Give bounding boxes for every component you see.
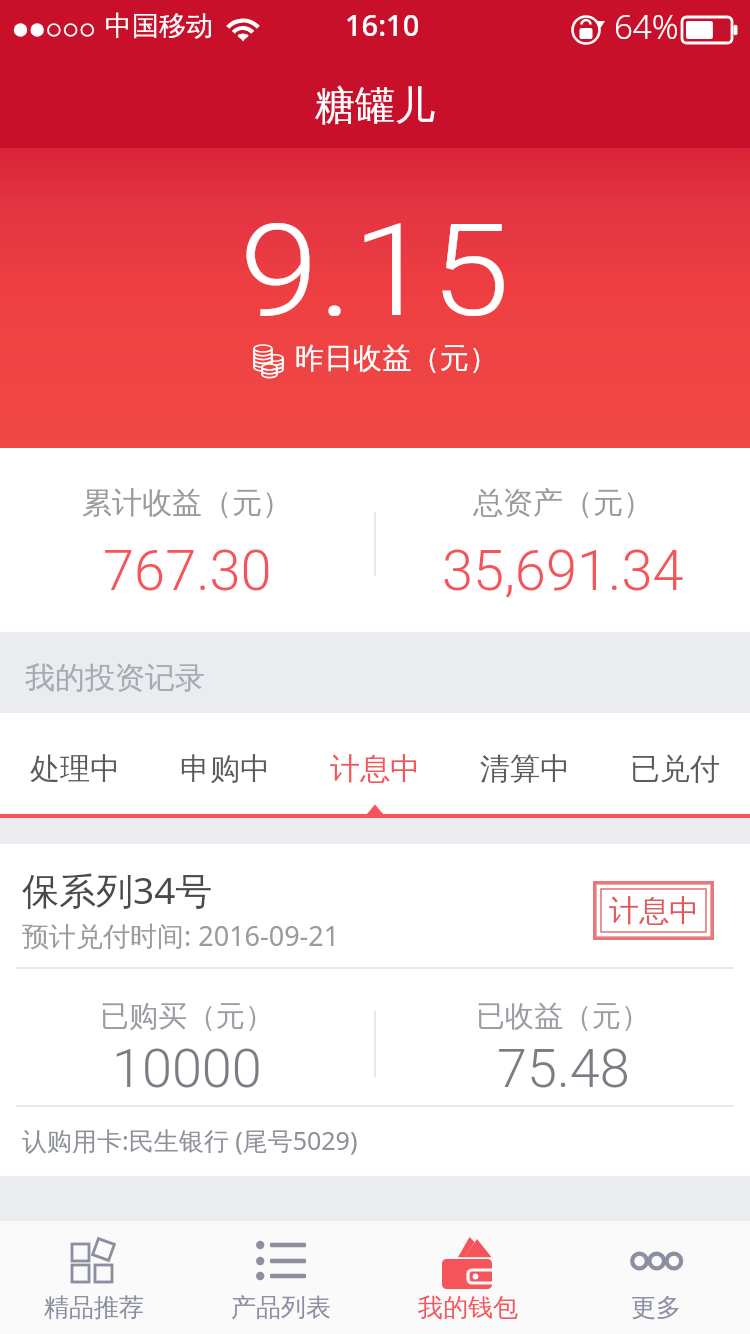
staticText: 计息中	[330, 750, 420, 788]
button[interactable]: 申购中	[150, 713, 300, 818]
staticText: 已购买（元）	[100, 998, 274, 1035]
staticText: 已兑付	[630, 750, 720, 788]
staticText: 35,691.34	[442, 538, 684, 604]
staticText: 昨日收益（元）	[295, 340, 498, 377]
staticText: 我的投资记录	[25, 659, 205, 697]
staticText: 总资产（元）	[473, 484, 653, 522]
staticText: 16:10	[345, 5, 420, 44]
staticText: 精品推荐	[44, 1292, 144, 1323]
staticText: 产品列表	[231, 1292, 331, 1323]
button[interactable]: 清算中	[450, 713, 600, 818]
staticText: 10000	[112, 1037, 262, 1100]
button[interactable]: 计息中	[300, 713, 450, 818]
staticText: 更多	[631, 1292, 681, 1323]
staticText: 糖罐儿	[315, 80, 435, 130]
button[interactable]: 产品列表	[187, 1221, 374, 1334]
button[interactable]: 更多	[562, 1221, 750, 1334]
staticText: 预计兑付时间: 2016-09-21	[22, 917, 340, 954]
button[interactable]: 保系列34号	[0, 844, 750, 1176]
staticText: 认购用卡:民生银行 (尾号5029)	[22, 1123, 358, 1157]
staticText: 9.15	[240, 196, 510, 346]
button[interactable]: 处理中	[0, 713, 150, 818]
button[interactable]: 精品推荐	[0, 1221, 187, 1334]
staticText: 申购中	[180, 750, 270, 788]
button[interactable]: 已兑付	[600, 713, 750, 818]
staticText: 累计收益（元）	[82, 484, 292, 522]
staticText: 64%	[614, 4, 679, 49]
staticText: 中国移动	[105, 9, 213, 43]
staticText: 计息中	[609, 892, 699, 930]
staticText: 767.30	[103, 538, 272, 604]
staticText: 75.48	[497, 1037, 630, 1100]
staticText: 我的钱包	[418, 1292, 518, 1323]
staticText: 清算中	[480, 750, 570, 788]
button[interactable]: 我的钱包	[374, 1221, 562, 1334]
staticText: 已收益（元）	[476, 998, 650, 1035]
staticText: 处理中	[30, 750, 120, 788]
staticText: 保系列34号	[22, 864, 213, 915]
